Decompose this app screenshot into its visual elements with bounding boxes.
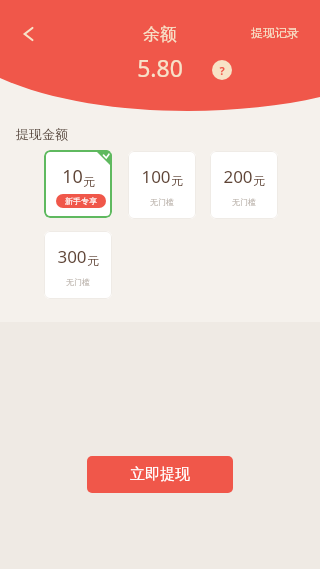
staticText: 元 (83, 174, 95, 189)
button[interactable]: 200 (210, 151, 278, 219)
staticText: 余额 (143, 24, 177, 45)
staticText: ? (219, 63, 225, 78)
staticText: 5.80 (137, 52, 183, 83)
button[interactable]: 300 (44, 231, 112, 299)
staticText: 立即提现 (130, 465, 190, 484)
staticText: 无门槛 (66, 277, 90, 287)
staticText: 100 (141, 165, 171, 188)
staticText: 无门槛 (150, 197, 174, 207)
staticText: 无门槛 (232, 197, 256, 207)
button[interactable]: Back (10, 16, 46, 52)
button[interactable]: 立即提现 (87, 456, 233, 493)
staticText: 新手专享 (65, 196, 97, 206)
button[interactable]: Help (212, 60, 232, 80)
button[interactable]: 100 (128, 151, 196, 219)
staticText: 提现金额 (16, 126, 68, 142)
staticText: 10 (62, 164, 83, 189)
button[interactable]: 提现记录 (246, 20, 304, 45)
staticText: 元 (253, 173, 265, 188)
button[interactable]: 10 (44, 150, 112, 218)
staticText: 元 (87, 253, 99, 268)
staticText: 300 (57, 245, 87, 268)
staticText: 元 (171, 173, 183, 188)
staticText: 200 (223, 165, 253, 188)
staticText: 提现记录 (251, 25, 299, 40)
